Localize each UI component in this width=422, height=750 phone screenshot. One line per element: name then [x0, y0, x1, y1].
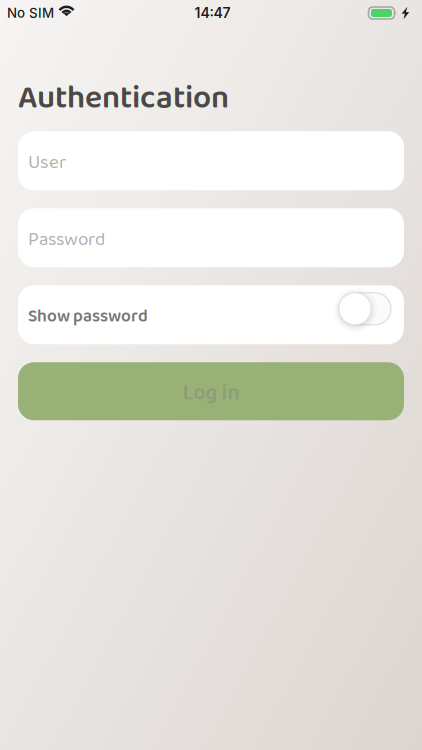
button[interactable]: User [18, 131, 404, 190]
button[interactable]: Log in [18, 362, 404, 420]
staticText: No SIM [7, 5, 54, 21]
staticText: 14:47 [194, 4, 230, 21]
button[interactable]: Password [18, 208, 404, 267]
staticText: Authentication [18, 73, 229, 124]
staticText: Password [28, 225, 105, 255]
staticText: Log in [182, 376, 239, 410]
staticText: User [28, 148, 66, 178]
staticText: Show password [28, 303, 148, 331]
button[interactable]: Show password [18, 285, 404, 344]
